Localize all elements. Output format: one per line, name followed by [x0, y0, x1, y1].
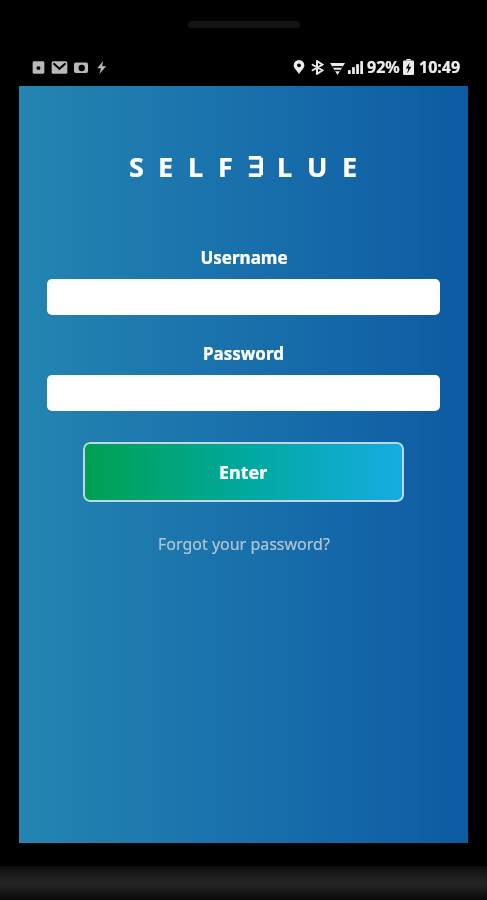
staticText: 10:49 — [419, 56, 461, 78]
staticText: E — [158, 148, 174, 185]
staticText: Password — [203, 342, 284, 365]
staticText: F — [218, 148, 233, 185]
staticText: L — [277, 148, 293, 185]
button[interactable]: Forgot your password? — [146, 527, 342, 561]
staticText: Username — [200, 246, 288, 269]
staticText: L — [188, 148, 204, 185]
staticText: Forgot your password? — [158, 533, 330, 555]
staticText: S — [129, 148, 144, 185]
button[interactable] — [47, 279, 440, 315]
button[interactable] — [47, 375, 440, 411]
button[interactable]: Enter — [83, 442, 404, 502]
staticText: E — [342, 148, 358, 185]
staticText: Enter — [219, 460, 268, 485]
staticText: U — [307, 148, 328, 185]
staticText: 92% — [367, 56, 400, 78]
